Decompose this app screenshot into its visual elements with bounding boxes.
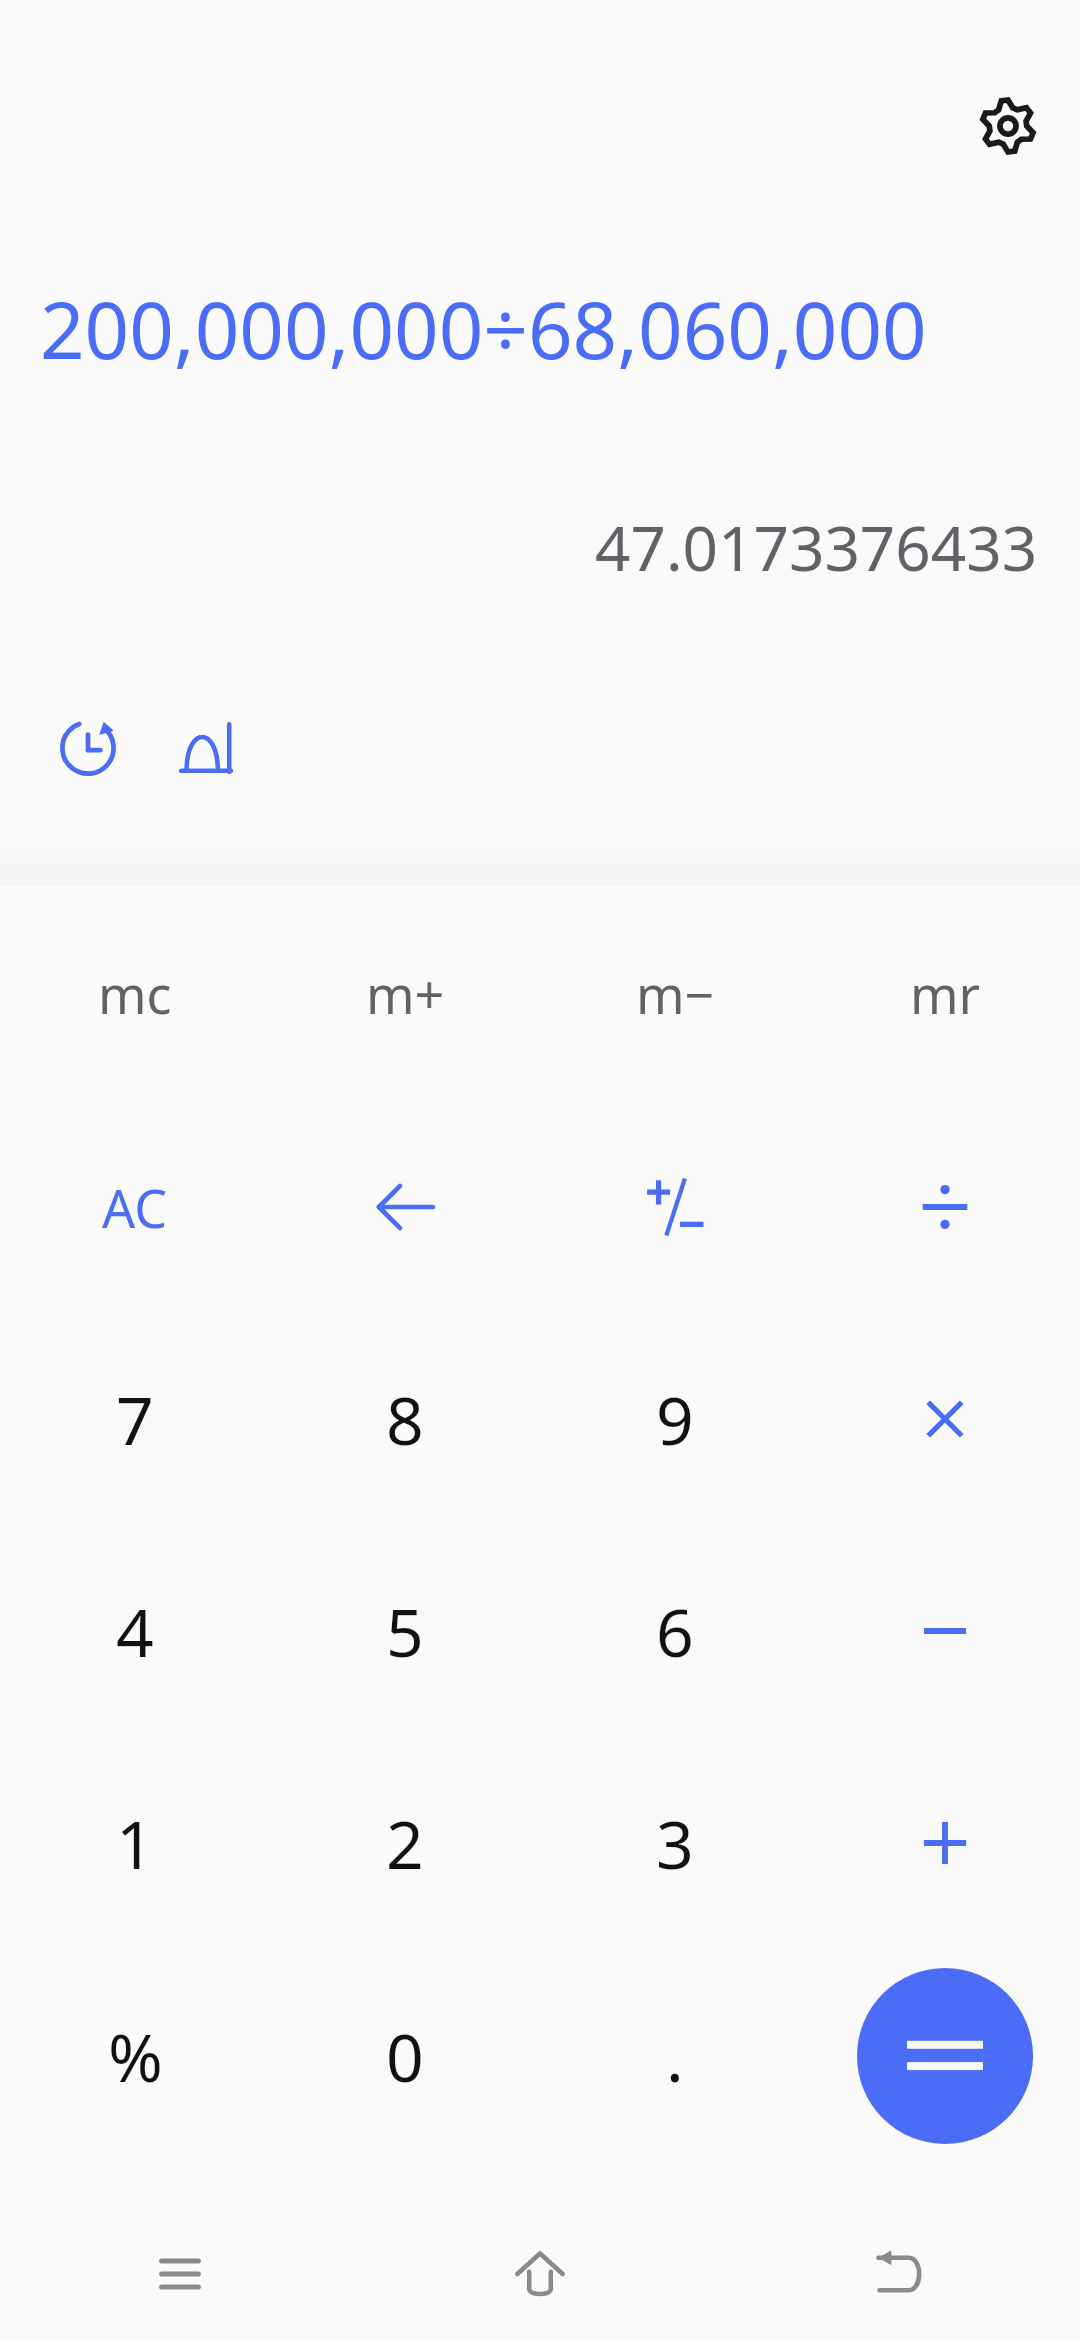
staticText: 3 bbox=[656, 1798, 694, 1888]
button[interactable]: Backspace bbox=[270, 1101, 540, 1313]
button[interactable]: Multiply bbox=[810, 1313, 1080, 1525]
staticText: 7 bbox=[116, 1374, 154, 1464]
button[interactable]: 5 bbox=[270, 1525, 540, 1737]
staticText: 6 bbox=[656, 1586, 694, 1676]
button[interactable]: Graph bbox=[148, 690, 264, 806]
button[interactable]: Plus bbox=[810, 1737, 1080, 1949]
staticText: . bbox=[666, 2011, 684, 2101]
button[interactable]: m− bbox=[540, 885, 810, 1101]
staticText: m− bbox=[636, 958, 715, 1029]
staticText: mr bbox=[910, 958, 981, 1029]
button[interactable]: 0 bbox=[270, 1949, 540, 2163]
button[interactable]: Minus bbox=[810, 1525, 1080, 1737]
button[interactable]: History bbox=[30, 690, 146, 806]
button[interactable]: Divide bbox=[810, 1101, 1080, 1313]
staticText: 200,000,000÷68,060,000 bbox=[40, 276, 927, 382]
button[interactable]: Settings bbox=[960, 78, 1056, 174]
staticText: 9 bbox=[656, 1374, 694, 1464]
staticText: 0 bbox=[386, 2011, 424, 2101]
staticText: % bbox=[108, 2011, 163, 2101]
button[interactable]: mr bbox=[810, 885, 1080, 1101]
staticText: 4 bbox=[116, 1586, 154, 1676]
staticText: 1 bbox=[116, 1798, 154, 1888]
button[interactable]: mc bbox=[0, 885, 270, 1101]
button[interactable]: Plus minus bbox=[540, 1101, 810, 1313]
button[interactable]: 4 bbox=[0, 1525, 270, 1737]
button[interactable]: AC bbox=[0, 1101, 270, 1313]
staticText: 5 bbox=[386, 1586, 424, 1676]
button[interactable]: 3 bbox=[540, 1737, 810, 1949]
button[interactable]: Equals bbox=[857, 1968, 1033, 2144]
staticText: 47.0173376433 bbox=[595, 505, 1038, 589]
button[interactable]: Recent apps bbox=[120, 2214, 240, 2334]
button[interactable]: . bbox=[540, 1949, 810, 2163]
button[interactable]: 9 bbox=[540, 1313, 810, 1525]
staticText: 8 bbox=[386, 1374, 424, 1464]
button[interactable]: 1 bbox=[0, 1737, 270, 1949]
button[interactable]: Back bbox=[840, 2214, 960, 2334]
staticText: 2 bbox=[386, 1798, 424, 1888]
button[interactable]: m+ bbox=[270, 885, 540, 1101]
button[interactable]: Home bbox=[480, 2214, 600, 2334]
staticText: mc bbox=[98, 958, 172, 1029]
staticText: m+ bbox=[366, 958, 445, 1029]
button[interactable]: 6 bbox=[540, 1525, 810, 1737]
button[interactable]: % bbox=[0, 1949, 270, 2163]
button[interactable]: 7 bbox=[0, 1313, 270, 1525]
button[interactable]: 8 bbox=[270, 1313, 540, 1525]
staticText: AC bbox=[102, 1172, 168, 1243]
button[interactable]: 2 bbox=[270, 1737, 540, 1949]
